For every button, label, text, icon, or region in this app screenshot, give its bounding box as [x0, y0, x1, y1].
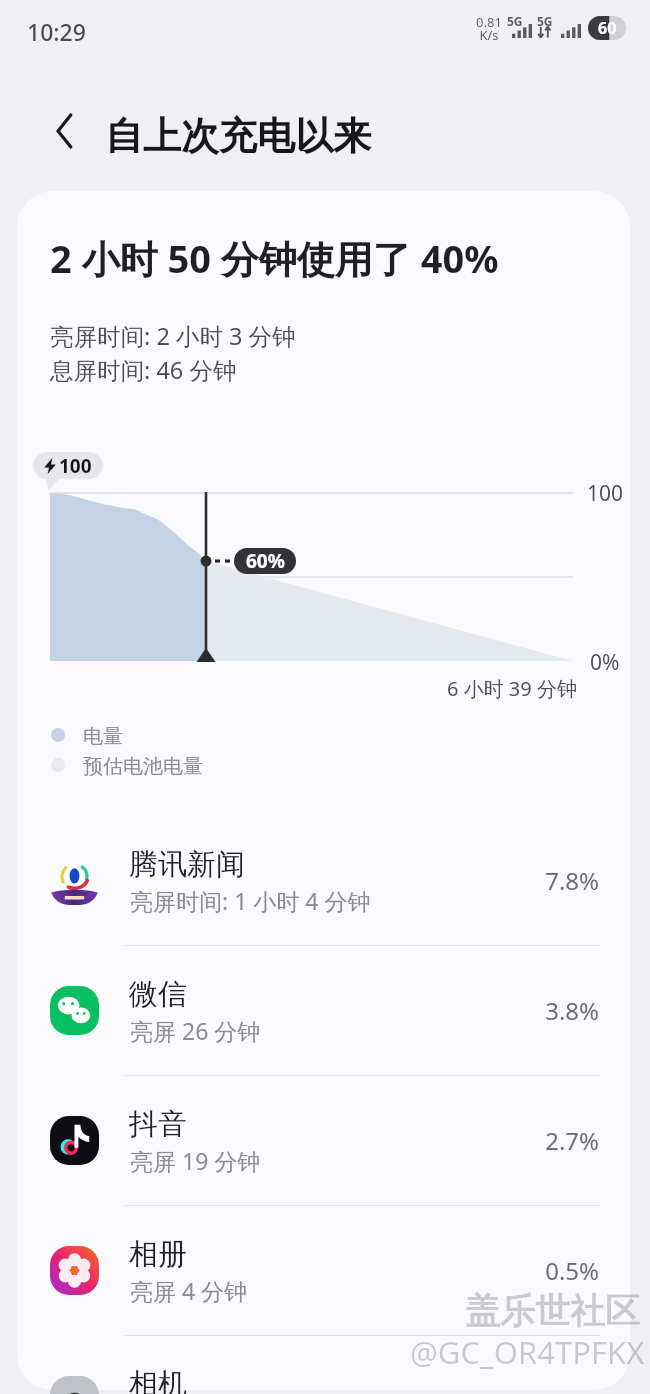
staticText: 亮屏 19 分钟 [130, 1145, 261, 1176]
staticText: 亮屏 26 分钟 [130, 1015, 261, 1046]
staticText: 亮屏时间: 2 小时 3 分钟 [50, 320, 296, 352]
button[interactable]: 相机 [18, 1335, 631, 1394]
staticText: 相机 [129, 1366, 187, 1394]
staticText: 0.81 [474, 13, 504, 31]
staticText: 6 小时 39 分钟 [447, 675, 577, 702]
staticText: 100 [587, 479, 624, 508]
staticText: @GC_OR4TPFKX [410, 1331, 645, 1373]
staticText: 60 [598, 17, 617, 39]
staticText: 盖乐世社区 [465, 1289, 640, 1333]
staticText: 预估电池电量 [83, 754, 203, 779]
staticText: 息屏时间: 46 分钟 [50, 354, 237, 386]
button[interactable]: 相册 [18, 1205, 631, 1335]
staticText: 0% [590, 648, 620, 677]
button[interactable]: Back [40, 108, 86, 154]
staticText: 微信 [129, 976, 187, 1013]
staticText: 抖音 [129, 1106, 187, 1143]
button[interactable]: 微信 [18, 945, 631, 1075]
staticText: 腾讯新闻 [129, 846, 245, 883]
staticText: 2 小时 50 分钟使用了 40% [50, 232, 499, 284]
button[interactable]: 抖音 [18, 1075, 631, 1205]
staticText: 100 [59, 453, 92, 479]
staticText: 10:29 [27, 16, 86, 47]
staticText: 7.8% [500, 864, 599, 897]
staticText: 5G [537, 13, 553, 29]
staticText: 亮屏 4 分钟 [130, 1275, 248, 1306]
staticText: 0.5% [500, 1254, 599, 1287]
staticText: 电量 [83, 724, 123, 749]
staticText: 自上次充电以来 [105, 112, 371, 160]
staticText: K/s [474, 26, 504, 44]
staticText: 2.7% [500, 1124, 599, 1157]
staticText: 3.8% [500, 994, 599, 1027]
staticText: 60% [246, 548, 285, 574]
staticText: 亮屏时间: 1 小时 4 分钟 [130, 885, 371, 916]
staticText: 5G [507, 13, 523, 29]
staticText: 相册 [129, 1236, 187, 1273]
button[interactable]: 腾讯新闻 [18, 815, 631, 945]
